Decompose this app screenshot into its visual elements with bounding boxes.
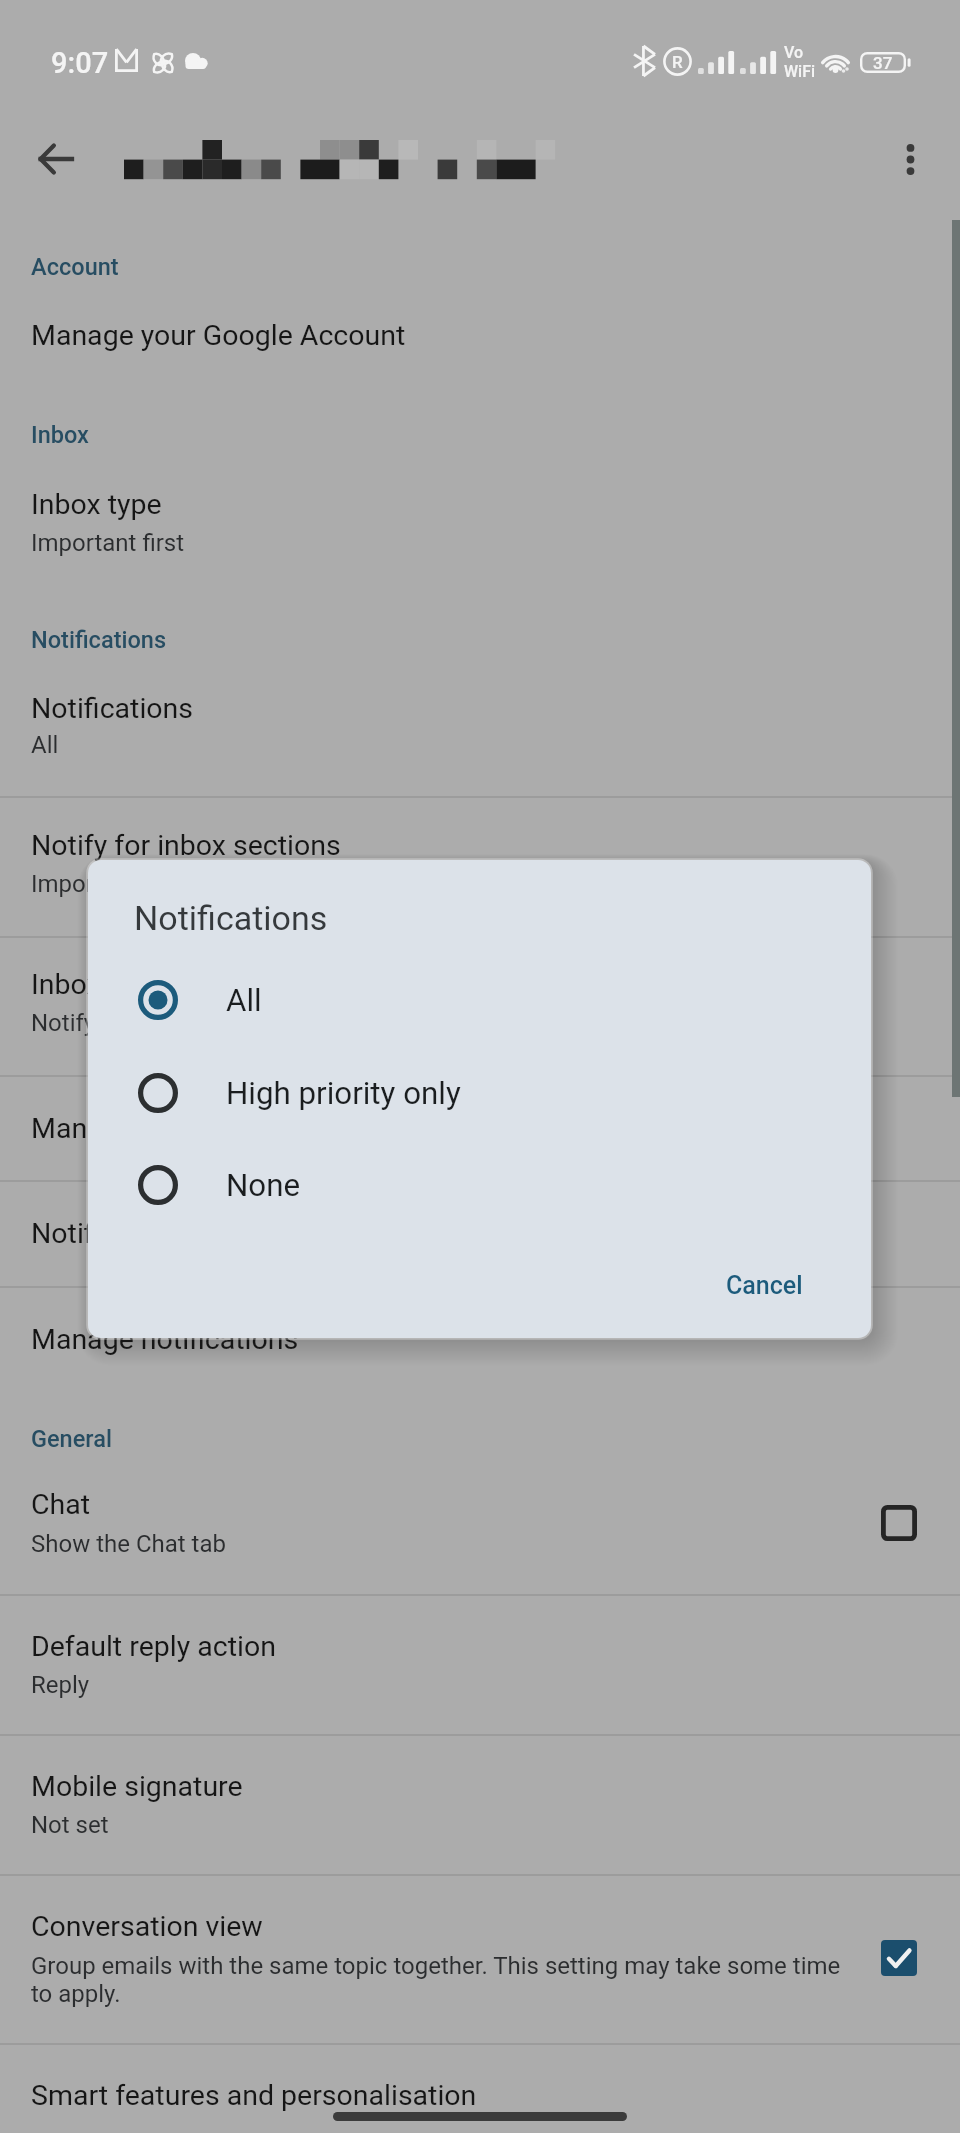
- staticText: Inbox sound & vibrate: [31, 968, 304, 1001]
- button[interactable]: Checked: [865, 1924, 933, 1992]
- button[interactable]: [0, 236, 960, 302]
- button[interactable]: [0, 466, 960, 576]
- staticText: Manage notifications: [31, 1323, 299, 1356]
- button[interactable]: Cancel: [696, 1253, 832, 1317]
- staticText: Important: [31, 870, 137, 898]
- staticText: Notifications: [134, 898, 328, 938]
- staticText: Cancel: [726, 1271, 803, 1300]
- button[interactable]: [0, 1734, 960, 1874]
- staticText: All: [226, 982, 262, 1019]
- staticText: General: [31, 1425, 112, 1453]
- button[interactable]: [0, 2043, 960, 2133]
- staticText: Mobile signature: [31, 1770, 243, 1803]
- staticText: Vo: [784, 43, 804, 62]
- button[interactable]: Unchecked: [865, 1489, 933, 1557]
- button[interactable]: Back: [15, 119, 95, 199]
- staticText: WiFi: [784, 62, 816, 81]
- button[interactable]: [0, 1286, 960, 1396]
- button[interactable]: [0, 670, 960, 796]
- staticText: Chat: [31, 1488, 91, 1521]
- button[interactable]: [0, 1594, 960, 1734]
- staticText: 9:07: [51, 46, 109, 80]
- button[interactable]: [0, 1075, 960, 1180]
- staticText: Notify for every message: [31, 1009, 298, 1037]
- button[interactable]: [0, 1470, 960, 1594]
- button[interactable]: [0, 1874, 960, 2043]
- staticText: to apply.: [31, 1980, 121, 2008]
- button[interactable]: None: [88, 1139, 871, 1231]
- staticText: Manage your Google Account: [31, 319, 406, 352]
- button[interactable]: More options: [870, 119, 950, 199]
- button[interactable]: High priority only: [88, 1047, 871, 1139]
- button[interactable]: [0, 936, 960, 1075]
- staticText: None: [226, 1167, 301, 1204]
- staticText: Reply: [31, 1671, 90, 1699]
- staticText: 37: [873, 53, 893, 73]
- button[interactable]: [0, 1180, 960, 1286]
- staticText: Manage labels: [31, 1112, 216, 1145]
- button[interactable]: All: [88, 954, 871, 1046]
- staticText: Inbox type: [31, 488, 162, 521]
- staticText: Group emails with the same topic togethe…: [31, 1952, 841, 1980]
- staticText: Notifications: [31, 692, 194, 725]
- staticText: Conversation view: [31, 1910, 263, 1943]
- staticText: Account: [31, 253, 119, 281]
- button[interactable]: [0, 796, 960, 936]
- staticText: Show the Chat tab: [31, 1530, 226, 1558]
- staticText: Notify for inbox sections: [31, 829, 341, 862]
- staticText: Default reply action: [31, 1630, 276, 1663]
- staticText: Inbox: [31, 421, 89, 449]
- staticText: Notifications: [31, 626, 167, 654]
- staticText: Smart features and personalisation: [31, 2079, 477, 2112]
- staticText: R: [672, 52, 683, 72]
- staticText: Notifications: [31, 1217, 194, 1250]
- staticText: Not set: [31, 1811, 109, 1839]
- staticText: All: [31, 731, 59, 759]
- staticText: High priority only: [226, 1075, 461, 1112]
- staticText: Important first: [31, 529, 185, 557]
